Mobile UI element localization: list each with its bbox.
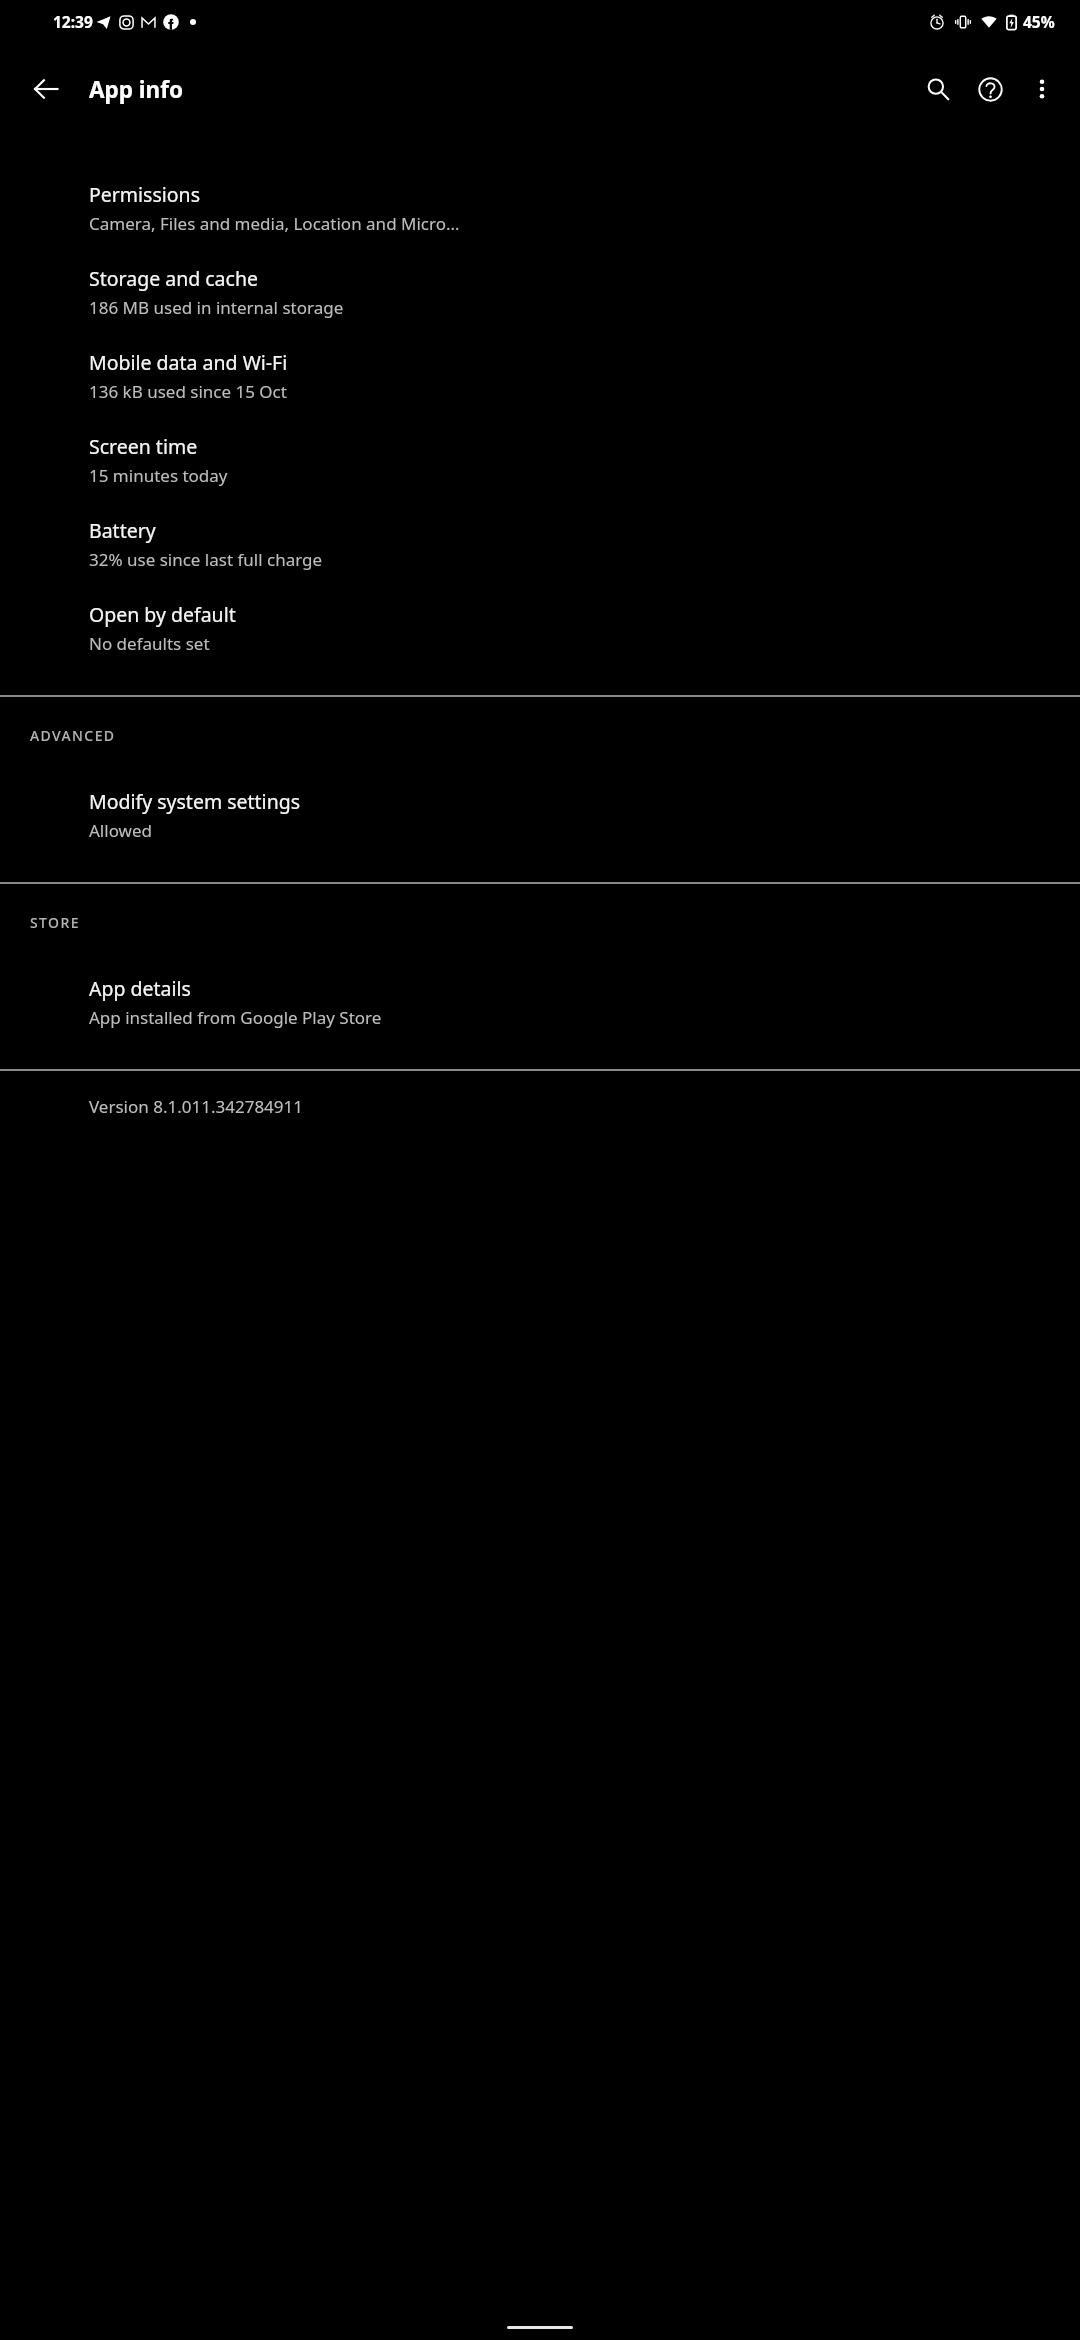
staticText: Modify system settings bbox=[89, 788, 301, 815]
button[interactable]: Back bbox=[18, 61, 74, 117]
staticText: ADVANCED bbox=[30, 726, 116, 745]
button[interactable]: Open by default bbox=[0, 586, 1080, 670]
button[interactable]: Permissions bbox=[0, 166, 1080, 250]
button[interactable]: Help bbox=[964, 63, 1016, 115]
staticText: App installed from Google Play Store bbox=[89, 1006, 382, 1029]
staticText: STORE bbox=[30, 913, 80, 932]
staticText: Camera, Files and media, Location and Mi… bbox=[89, 212, 460, 235]
staticText: 186 MB used in internal storage bbox=[89, 296, 344, 319]
staticText: 32% use since last full charge bbox=[89, 548, 323, 571]
button[interactable]: App details bbox=[0, 960, 1080, 1044]
staticText: Screen time bbox=[89, 433, 198, 460]
staticText: Permissions bbox=[89, 181, 201, 208]
staticText: 12:39 bbox=[53, 11, 93, 32]
staticText: App info bbox=[89, 74, 183, 105]
staticText: Storage and cache bbox=[89, 265, 258, 292]
staticText: 136 kB used since 15 Oct bbox=[89, 380, 287, 403]
staticText: Open by default bbox=[89, 601, 236, 628]
staticText: Version 8.1.011.342784911 bbox=[89, 1095, 304, 1118]
button[interactable]: Screen time bbox=[0, 418, 1080, 502]
button[interactable]: Battery bbox=[0, 502, 1080, 586]
staticText: 15 minutes today bbox=[89, 464, 228, 487]
button[interactable]: Storage and cache bbox=[0, 250, 1080, 334]
staticText: Allowed bbox=[89, 819, 152, 842]
staticText: 45% bbox=[1023, 11, 1055, 32]
button[interactable]: Mobile data and Wi-Fi bbox=[0, 334, 1080, 418]
staticText: Mobile data and Wi-Fi bbox=[89, 349, 288, 376]
staticText: Battery bbox=[89, 517, 156, 544]
button[interactable]: More options bbox=[1016, 63, 1068, 115]
staticText: App details bbox=[89, 975, 191, 1002]
staticText: No defaults set bbox=[89, 632, 210, 655]
button[interactable]: Search bbox=[912, 63, 964, 115]
button[interactable]: Modify system settings bbox=[0, 773, 1080, 857]
